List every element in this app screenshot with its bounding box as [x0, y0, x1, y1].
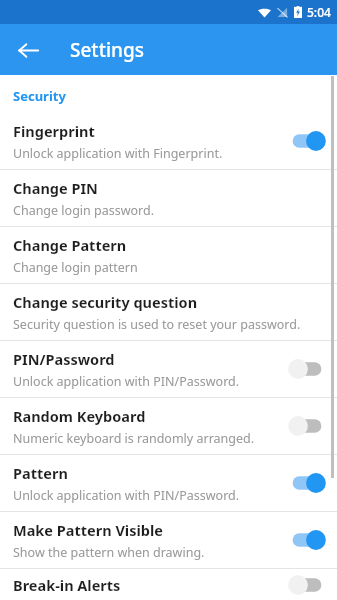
button[interactable]: Back: [11, 33, 45, 67]
staticText: Random Keyboard: [13, 406, 146, 426]
staticText: Security: [13, 87, 66, 105]
button[interactable]: Make Pattern Visible: [0, 512, 337, 568]
staticText: Change PIN: [13, 178, 98, 198]
staticText: Unlock application with PIN/Password.: [13, 373, 240, 390]
staticText: 5:04: [307, 4, 331, 20]
staticText: Fingerprint: [13, 121, 95, 141]
button[interactable]: Break-in Alerts: [0, 569, 337, 600]
staticText: Settings: [70, 37, 144, 63]
staticText: Change security question: [13, 292, 198, 312]
button[interactable]: Fingerprint: [0, 113, 337, 169]
staticText: Pattern: [13, 463, 68, 483]
staticText: Break-in Alerts: [13, 575, 121, 595]
staticText: Security question is used to reset your …: [13, 316, 301, 333]
button[interactable]: Toggle off: [287, 356, 327, 382]
button[interactable]: Change PIN: [0, 170, 337, 226]
button[interactable]: Change Pattern: [0, 227, 337, 283]
button[interactable]: Pattern: [0, 455, 337, 511]
button[interactable]: Toggle off: [287, 413, 327, 439]
staticText: Show the pattern when drawing.: [13, 544, 205, 561]
staticText: Change Pattern: [13, 235, 127, 255]
button[interactable]: Change security question: [0, 284, 337, 340]
staticText: Make Pattern Visible: [13, 520, 163, 540]
button[interactable]: Toggle on: [287, 470, 327, 496]
staticText: Change login password.: [13, 202, 155, 219]
button[interactable]: Toggle on: [287, 128, 327, 154]
button[interactable]: PIN/Password: [0, 341, 337, 397]
staticText: Unlock application with Fingerprint.: [13, 145, 223, 162]
staticText: Change login pattern: [13, 259, 138, 276]
button[interactable]: Toggle on: [287, 527, 327, 553]
staticText: PIN/Password: [13, 349, 115, 369]
staticText: Unlock application with PIN/Password.: [13, 487, 240, 504]
button[interactable]: Toggle off: [287, 572, 327, 598]
button[interactable]: Random Keyboard: [0, 398, 337, 454]
staticText: Numeric keyboard is randomly arranged.: [13, 430, 255, 447]
